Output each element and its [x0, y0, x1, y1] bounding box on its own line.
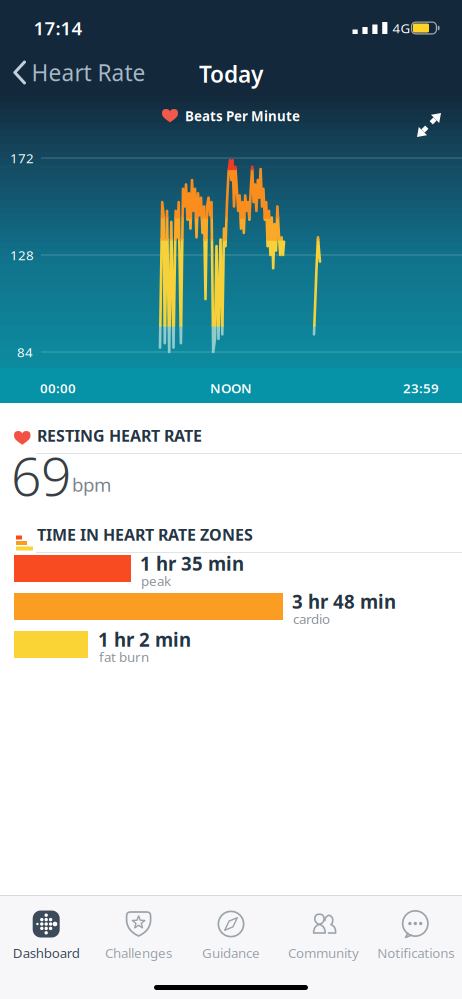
staticText: 1 hr 35 min — [140, 551, 244, 576]
staticText: Notifications — [377, 944, 454, 962]
button[interactable]: Expand chart — [414, 110, 444, 140]
staticText: 23:59 — [403, 379, 439, 397]
button[interactable]: Guidance — [185, 910, 277, 962]
staticText: TIME IN HEART RATE ZONES — [37, 524, 253, 545]
staticText: Today — [199, 59, 263, 89]
staticText: Challenges — [105, 944, 172, 962]
staticText: 84 — [17, 343, 33, 361]
staticText: Guidance — [202, 944, 260, 962]
staticText: 17:14 — [33, 16, 82, 40]
staticText: bpm — [72, 472, 111, 497]
staticText: 69 — [11, 440, 71, 511]
staticText: Dashboard — [13, 944, 80, 962]
staticText: Beats Per Minute — [185, 107, 300, 125]
button[interactable]: Notifications — [370, 910, 462, 962]
button[interactable]: Challenges — [92, 910, 185, 962]
staticText: 3 hr 48 min — [292, 589, 396, 614]
staticText: 4G — [392, 19, 410, 37]
button[interactable]: Community — [277, 910, 370, 962]
staticText: RESTING HEART RATE — [37, 425, 202, 446]
button[interactable]: Back — [0, 44, 145, 95]
staticText: peak — [141, 572, 171, 590]
staticText: 1 hr 2 min — [98, 627, 191, 652]
staticText: Heart Rate — [31, 57, 145, 87]
staticText: 00:00 — [40, 379, 76, 397]
staticText: NOON — [210, 379, 252, 397]
staticText: cardio — [293, 610, 330, 628]
staticText: 128 — [10, 246, 34, 264]
staticText: 172 — [10, 149, 34, 167]
button[interactable]: Dashboard — [0, 910, 92, 962]
staticText: fat burn — [99, 648, 149, 666]
staticText: Community — [288, 944, 359, 962]
